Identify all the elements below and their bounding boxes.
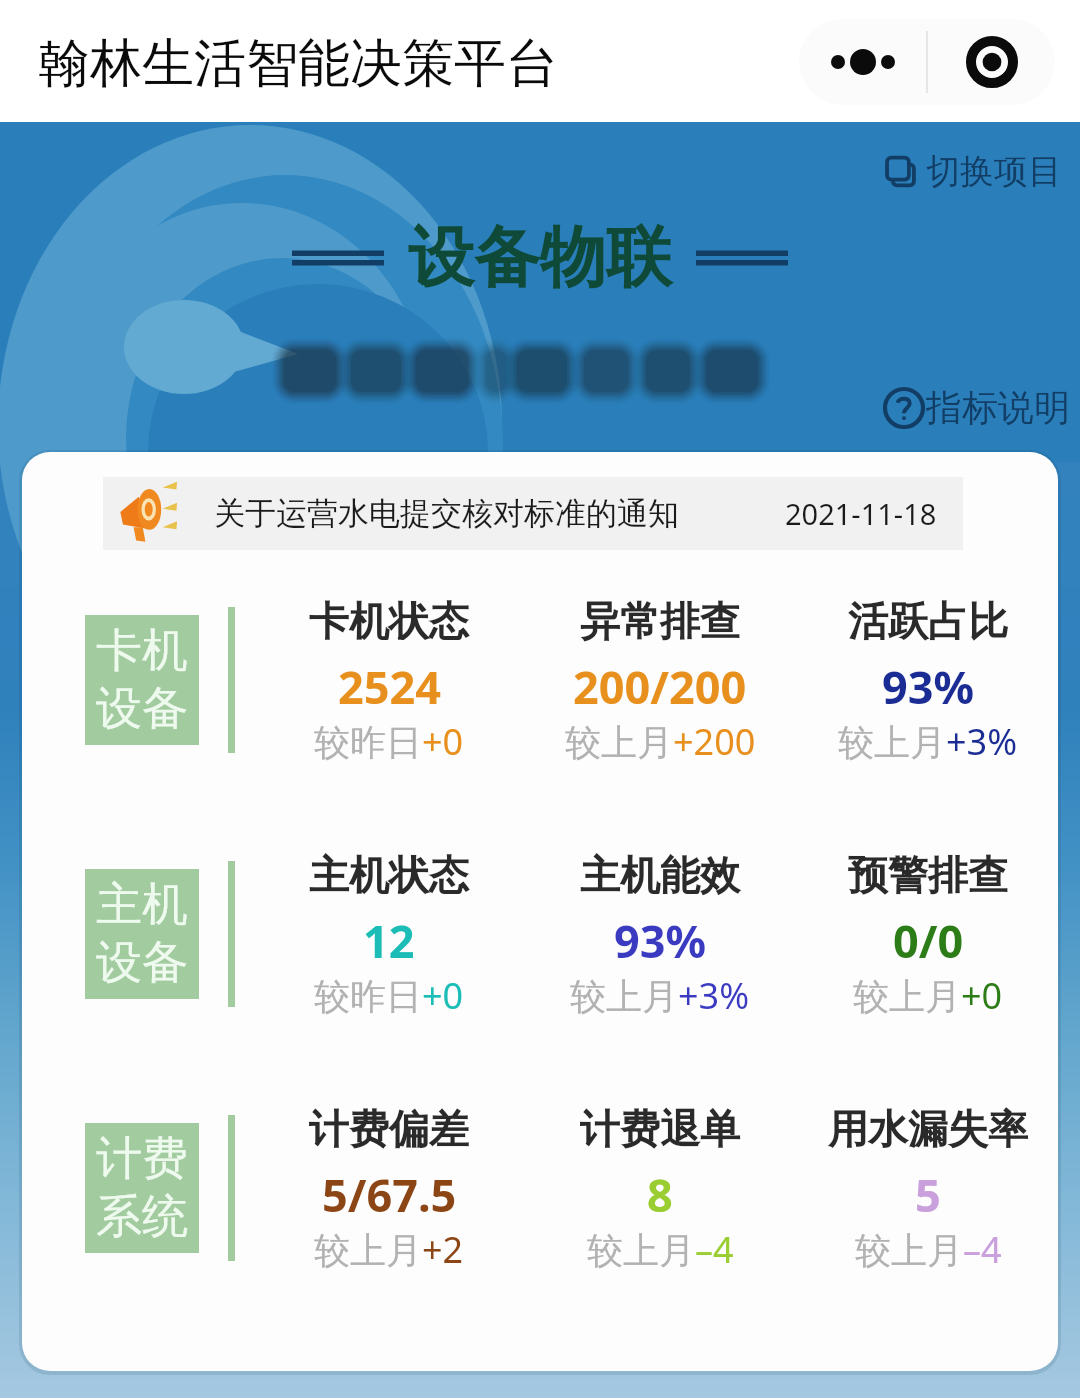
- button[interactable]: 计费偏差: [219, 1104, 559, 1274]
- staticText: 较上月–4: [855, 1225, 1002, 1274]
- button[interactable]: 卡机状态: [219, 596, 559, 766]
- staticText: 93%: [614, 910, 707, 971]
- button[interactable]: 关于运营水电提交核对标准的通知: [103, 477, 963, 550]
- button[interactable]: 预警排查: [758, 850, 1058, 1020]
- staticText: 翰林生活智能决策平台: [38, 31, 558, 97]
- staticText: 2021-11-18: [785, 494, 937, 533]
- staticText: 卡机 设备: [96, 622, 188, 738]
- button[interactable]: 计费退单: [490, 1104, 830, 1274]
- staticText: 设备物联: [408, 216, 672, 299]
- staticText: 较上月–4: [587, 1225, 734, 1274]
- staticText: 活跃占比: [848, 596, 1008, 646]
- staticText: 计费 系统: [96, 1130, 188, 1246]
- button[interactable]: 指标说明: [878, 381, 1074, 434]
- button[interactable]: 主机状态: [219, 850, 559, 1020]
- staticText: 主机 设备: [96, 876, 188, 992]
- staticText: 较昨日+0: [314, 971, 464, 1020]
- staticText: 12: [363, 910, 415, 971]
- staticText: 主机能效: [580, 850, 740, 900]
- button[interactable]: 异常排查: [490, 596, 830, 766]
- staticText: 93%: [882, 656, 975, 717]
- staticText: 5: [915, 1164, 941, 1225]
- button[interactable]: 计费 系统: [85, 1123, 199, 1253]
- staticText: 用水漏失率: [828, 1104, 1028, 1154]
- staticText: 8: [647, 1164, 673, 1225]
- staticText: 关于运营水电提交核对标准的通知: [214, 494, 679, 533]
- button[interactable]: 主机能效: [490, 850, 830, 1020]
- staticText: 较上月+2: [314, 1225, 464, 1274]
- staticText: 切换项目: [926, 150, 1062, 193]
- button[interactable]: More options: [799, 19, 926, 105]
- staticText: 较上月+200: [565, 717, 756, 766]
- staticText: 预警排查: [848, 850, 1008, 900]
- staticText: 较上月+3%: [838, 717, 1018, 766]
- staticText: 异常排查: [580, 596, 740, 646]
- staticText: 计费退单: [580, 1104, 740, 1154]
- staticText: 5/67.5: [322, 1164, 457, 1225]
- staticText: 指标说明: [926, 385, 1070, 430]
- staticText: 较上月+3%: [570, 971, 750, 1020]
- button[interactable]: 主机 设备: [85, 869, 199, 999]
- button[interactable]: 切换项目: [878, 146, 1066, 197]
- staticText: 较昨日+0: [314, 717, 464, 766]
- button[interactable]: 用水漏失率: [758, 1104, 1058, 1274]
- staticText: 200/200: [573, 656, 747, 717]
- staticText: 0/0: [893, 910, 964, 971]
- staticText: 2524: [338, 656, 441, 717]
- button[interactable]: 活跃占比: [758, 596, 1058, 766]
- staticText: 计费偏差: [309, 1104, 469, 1154]
- button[interactable]: 卡机 设备: [85, 615, 199, 745]
- staticText: 主机状态: [309, 850, 469, 900]
- staticText: 卡机状态: [309, 596, 469, 646]
- staticText: 较上月+0: [853, 971, 1003, 1020]
- button[interactable]: Close mini program: [928, 19, 1055, 105]
